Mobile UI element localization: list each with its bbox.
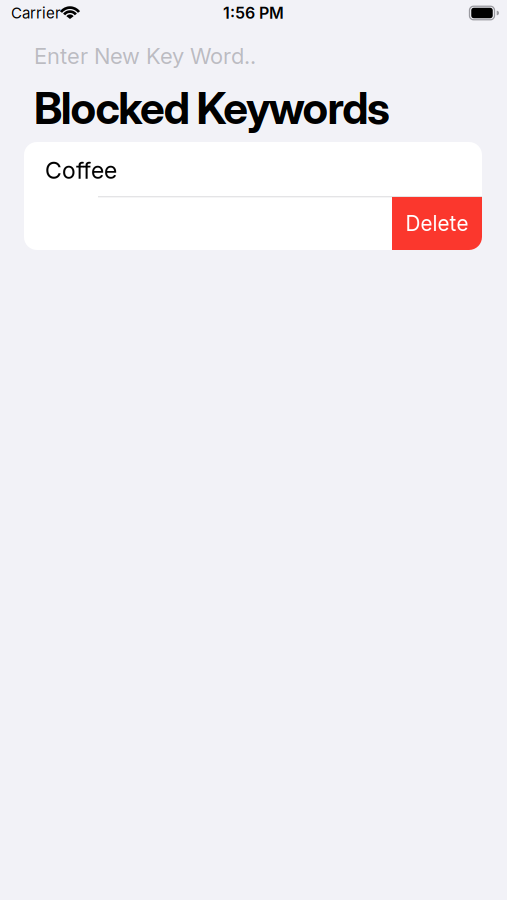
staticText: Carrier (11, 4, 61, 22)
staticText: Coffee (45, 157, 117, 184)
staticText: Delete (405, 211, 468, 236)
staticText: 1:56 PM (223, 3, 284, 23)
staticText: Blocked Keywords (34, 81, 390, 135)
staticText: Enter New Key Word.. (34, 43, 256, 69)
button[interactable]: Delete (392, 197, 482, 250)
button[interactable]: Enter New Key Word (34, 43, 434, 69)
